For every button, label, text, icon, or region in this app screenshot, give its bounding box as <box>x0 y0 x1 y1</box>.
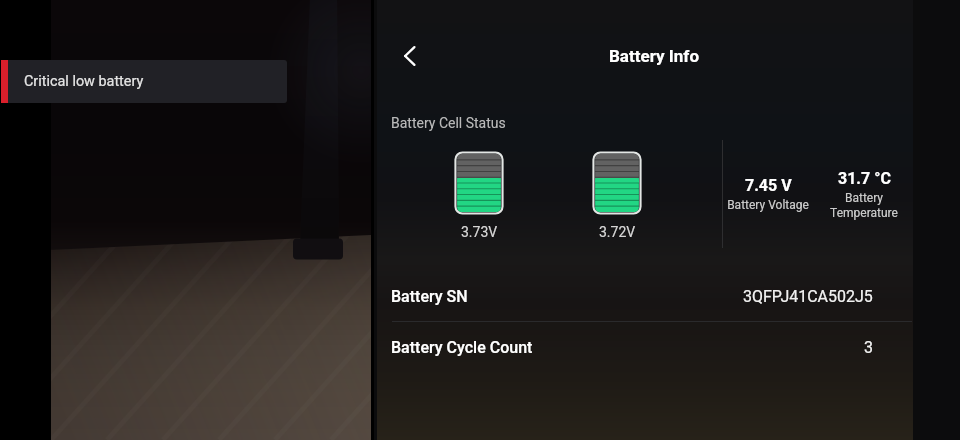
button[interactable]: Critical low battery <box>1 60 287 103</box>
staticText: Battery Info <box>609 46 699 66</box>
staticText: Battery SN <box>391 287 468 306</box>
staticText: 3 <box>864 338 873 357</box>
staticText: 7.45 V <box>745 176 792 195</box>
staticText: Battery Temperature <box>830 191 898 220</box>
button[interactable]: Battery SN <box>377 271 913 322</box>
staticText: 3.73V <box>461 224 498 240</box>
staticText: Critical low battery <box>24 73 144 90</box>
staticText: 3.72V <box>599 224 636 240</box>
staticText: 31.7 °C <box>838 169 891 188</box>
staticText: Battery Cycle Count <box>391 338 533 357</box>
staticText: Battery Voltage <box>727 198 809 212</box>
staticText: Battery Cell Status <box>391 115 506 131</box>
button[interactable]: Battery Cycle Count <box>377 322 913 373</box>
button[interactable]: Back <box>386 32 434 80</box>
staticText: 3QFPJ41CA502J5 <box>743 287 873 306</box>
